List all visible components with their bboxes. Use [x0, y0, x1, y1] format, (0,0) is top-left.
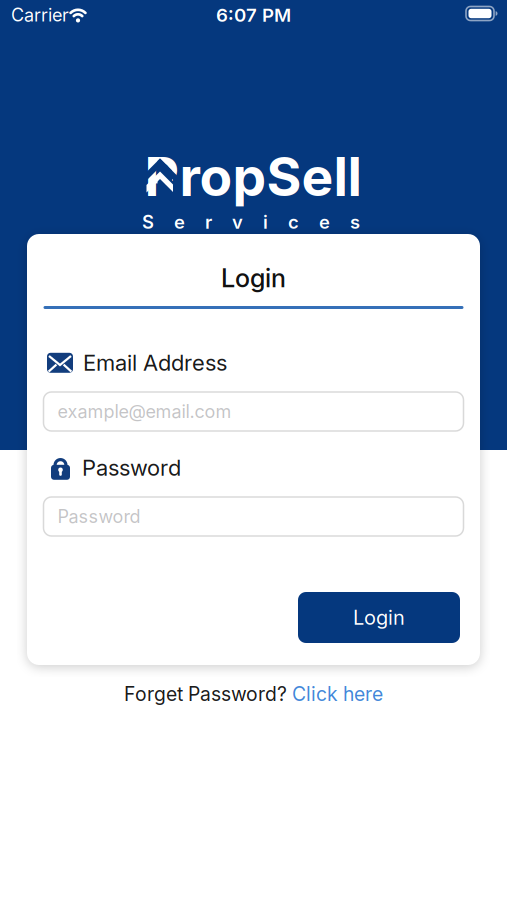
staticText: Password	[57, 506, 140, 527]
button[interactable]: Email Address	[43, 392, 463, 431]
staticText: Click here	[292, 682, 383, 706]
button[interactable]: Click here	[292, 682, 383, 706]
staticText: example@email.com	[57, 401, 231, 422]
button[interactable]: Password	[43, 497, 463, 536]
staticText: 6:07 PM	[216, 4, 291, 26]
staticText: Email Address	[83, 349, 227, 376]
staticText: Carrier	[11, 4, 69, 26]
button[interactable]: Login	[298, 592, 460, 643]
staticText: PropSell	[144, 144, 361, 209]
staticText: Password	[82, 454, 181, 481]
staticText: Forget Password?	[124, 682, 287, 706]
staticText: Login	[353, 605, 405, 630]
staticText: Login	[221, 263, 286, 293]
staticText: S e r v i c e s	[142, 211, 360, 233]
